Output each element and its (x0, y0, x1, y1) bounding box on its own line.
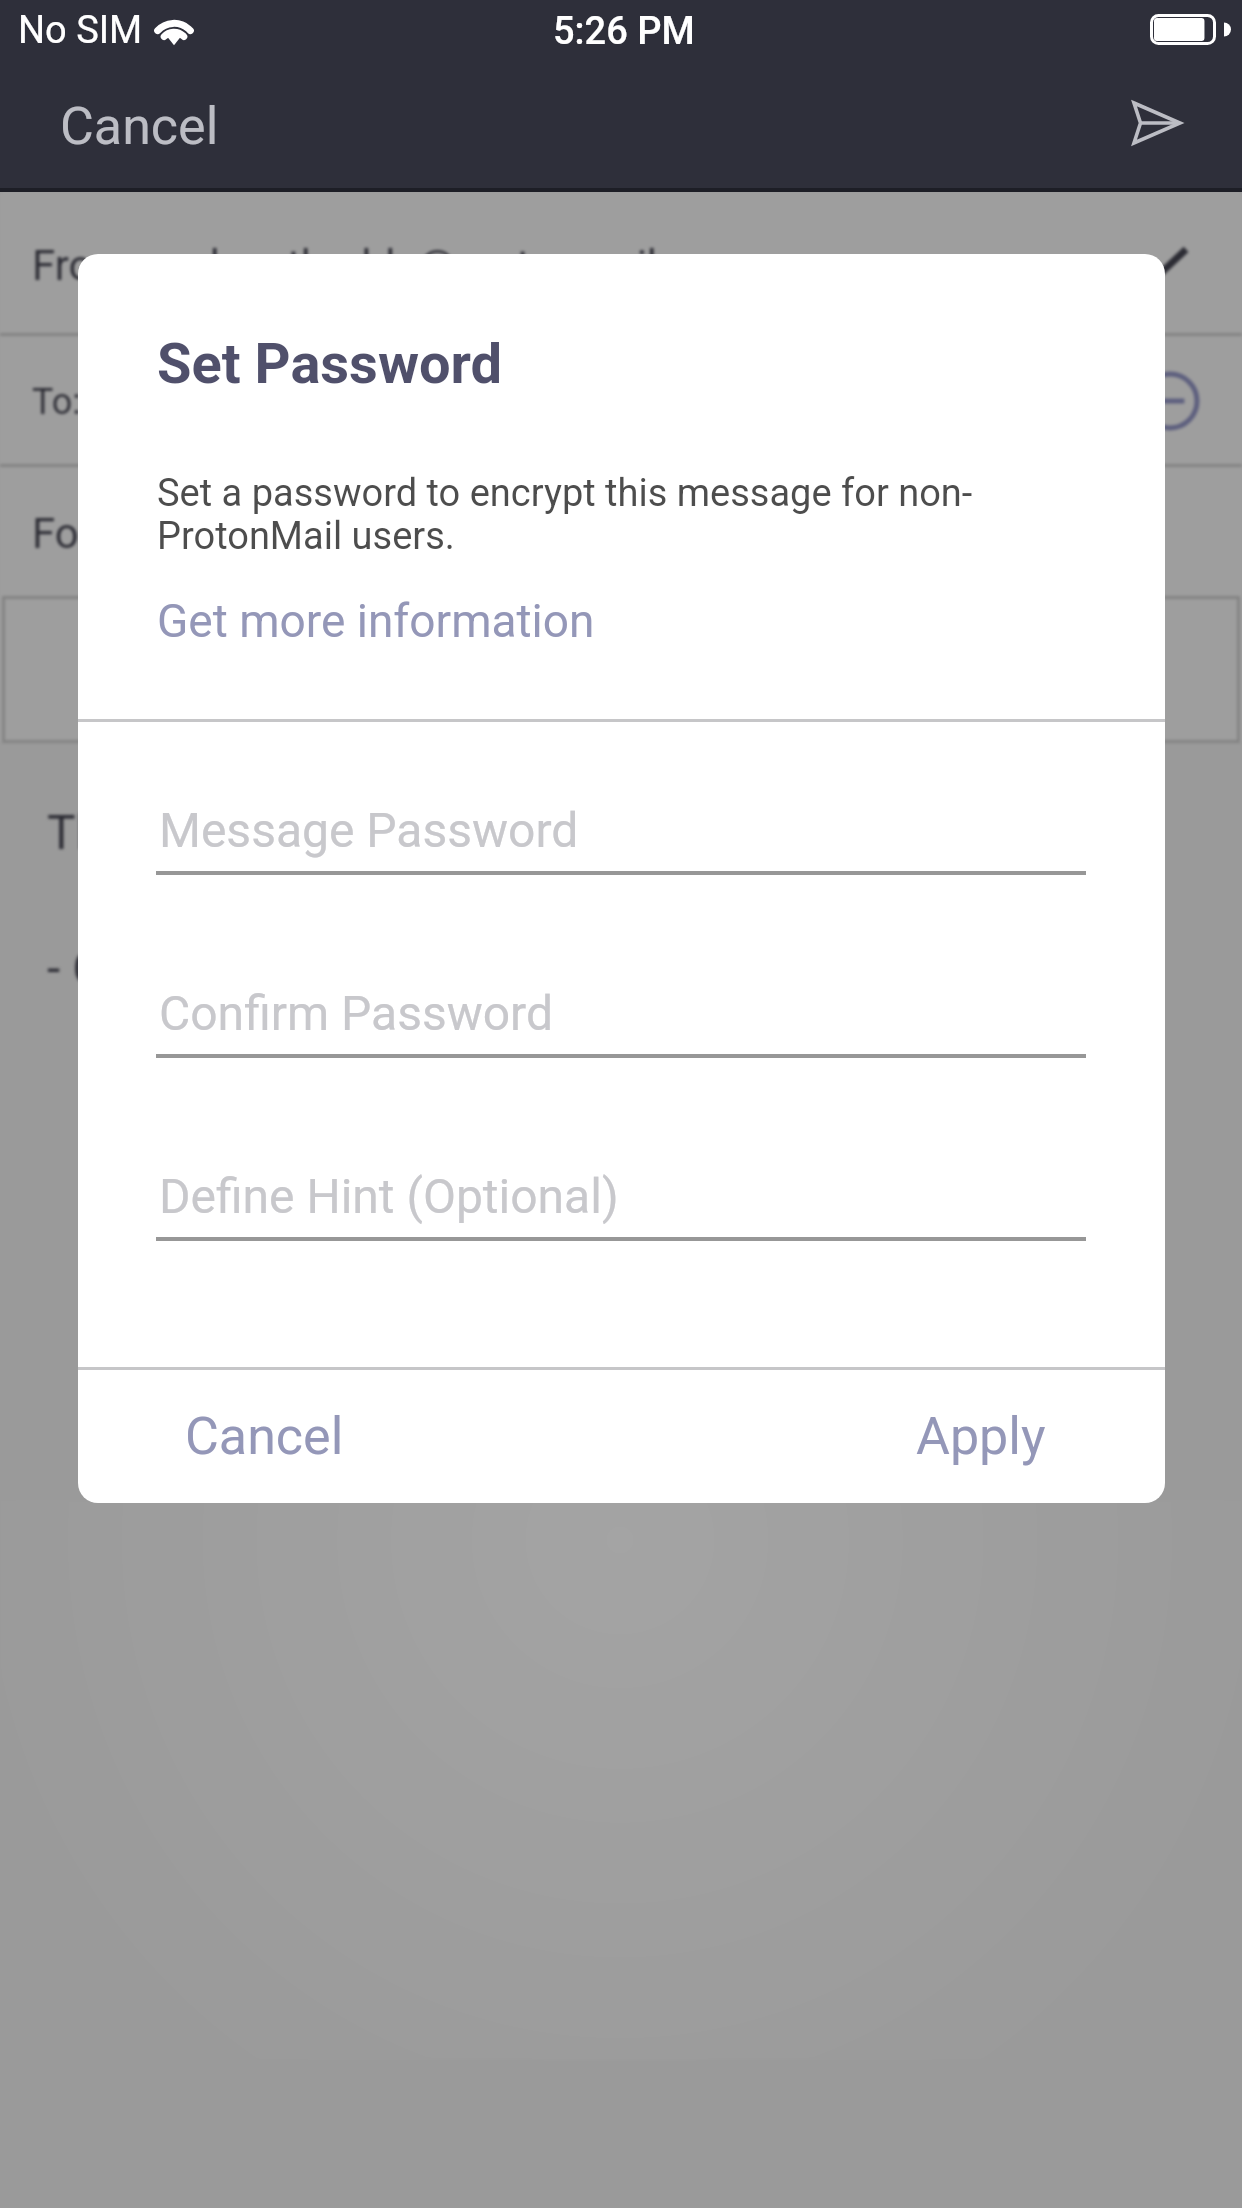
staticText: Cancel (60, 96, 219, 157)
staticText: - Greetings (47, 940, 278, 996)
staticText: Get more information (157, 594, 595, 648)
button[interactable]: Confirm Password (156, 963, 1086, 1058)
staticText: To: (32, 381, 81, 423)
button[interactable]: Get more information (157, 582, 595, 660)
button[interactable]: Cancel (36, 80, 243, 173)
staticText: This is a test message (47, 804, 526, 860)
button[interactable]: Cancel (147, 1382, 382, 1491)
staticText: Set Password (157, 331, 503, 397)
button[interactable]: Message Password (156, 780, 1086, 875)
staticText: 5:26 PM (553, 9, 695, 54)
staticText: From: andrewtharlde@protonmail.com (32, 241, 751, 290)
staticText: No SIM (18, 8, 143, 53)
staticText: Cancel (185, 1406, 344, 1467)
button[interactable]: Send (1132, 78, 1226, 166)
staticText: Define Hint (Optional) (159, 1168, 619, 1224)
button[interactable]: Define Hint (Optional) (156, 1146, 1086, 1241)
staticText: Forward: Your message (32, 509, 473, 558)
staticText: Apply (916, 1406, 1046, 1467)
staticText: Message Password (159, 802, 579, 858)
staticText: Set a password to encrypt this message f… (157, 471, 1037, 558)
button[interactable]: Apply (878, 1382, 1084, 1491)
staticText: Confirm Password (159, 985, 554, 1041)
